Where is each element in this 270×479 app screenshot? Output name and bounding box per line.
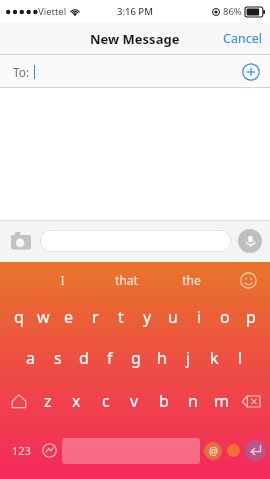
staticText: n: [188, 390, 198, 412]
staticText: s: [54, 347, 62, 369]
staticText: 123: [12, 443, 31, 458]
button[interactable]: the: [159, 262, 224, 298]
button[interactable]: Emoji: [240, 272, 257, 289]
button[interactable]: l: [227, 336, 253, 380]
staticText: y: [143, 306, 152, 328]
staticText: @: [209, 444, 218, 458]
button[interactable]: I: [30, 262, 94, 298]
button[interactable]: r: [82, 298, 108, 336]
staticText: I: [60, 272, 65, 288]
staticText: j: [186, 347, 191, 369]
staticText: o: [220, 306, 230, 328]
button[interactable]: At sign: [204, 442, 222, 460]
button[interactable]: o: [212, 298, 238, 336]
staticText: a: [26, 347, 35, 369]
button[interactable]: h: [149, 336, 175, 380]
staticText: p: [246, 306, 256, 328]
button[interactable]: z: [34, 380, 62, 422]
staticText: Cancel: [223, 30, 262, 47]
button[interactable]: d: [71, 336, 97, 380]
staticText: Viettel: [38, 5, 67, 18]
button[interactable]: u: [160, 298, 186, 336]
staticText: w: [37, 306, 50, 328]
button[interactable]: m: [207, 380, 236, 422]
button[interactable]: [40, 230, 231, 252]
staticText: f: [107, 347, 113, 369]
button[interactable]: q: [6, 298, 31, 336]
button[interactable]: p: [238, 298, 264, 336]
button[interactable]: n: [178, 380, 207, 422]
button[interactable]: Period: [227, 444, 240, 457]
button[interactable]: x: [62, 380, 91, 422]
staticText: h: [157, 347, 167, 369]
button[interactable]: Backspace: [236, 380, 266, 422]
button[interactable]: y: [134, 298, 160, 336]
button[interactable]: w: [31, 298, 56, 336]
button[interactable]: To:: [0, 55, 270, 88]
button[interactable]: Return: [245, 440, 266, 461]
staticText: v: [130, 390, 139, 412]
button[interactable]: t: [108, 298, 134, 336]
button[interactable]: c: [91, 380, 120, 422]
button[interactable]: e: [56, 298, 82, 336]
button[interactable]: 123: [6, 422, 36, 479]
staticText: 86%: [223, 5, 242, 18]
staticText: that: [115, 272, 138, 288]
staticText: u: [168, 306, 178, 328]
button[interactable]: Theme: [36, 422, 62, 479]
staticText: New Message: [90, 30, 180, 48]
staticText: To:: [13, 64, 30, 80]
staticText: z: [44, 390, 52, 412]
button[interactable]: j: [175, 336, 201, 380]
button[interactable]: k: [201, 336, 227, 380]
staticText: t: [118, 306, 124, 328]
button[interactable]: that: [94, 262, 159, 298]
staticText: g: [131, 347, 141, 369]
staticText: d: [79, 347, 89, 369]
staticText: r: [92, 306, 99, 328]
button[interactable]: g: [123, 336, 149, 380]
button[interactable]: b: [149, 380, 178, 422]
staticText: i: [197, 306, 202, 328]
staticText: l: [238, 347, 243, 369]
staticText: q: [14, 306, 24, 328]
button[interactable]: Cancel: [215, 24, 270, 53]
button[interactable]: v: [120, 380, 149, 422]
button[interactable]: Camera: [8, 228, 34, 254]
staticText: k: [210, 347, 219, 369]
button[interactable]: s: [44, 336, 71, 380]
button[interactable]: f: [97, 336, 123, 380]
button[interactable]: Shift: [4, 380, 34, 422]
staticText: x: [72, 390, 81, 412]
staticText: m: [214, 390, 229, 412]
button[interactable]: Add contact: [242, 63, 260, 81]
staticText: 3:16 PM: [117, 5, 153, 18]
staticText: e: [64, 306, 74, 328]
staticText: c: [102, 390, 110, 412]
staticText: b: [159, 390, 169, 412]
staticText: the: [182, 272, 201, 288]
button[interactable]: a: [17, 336, 44, 380]
button[interactable]: i: [186, 298, 212, 336]
button[interactable]: Voice message: [238, 229, 262, 253]
